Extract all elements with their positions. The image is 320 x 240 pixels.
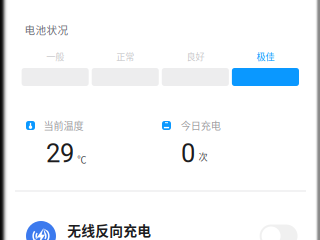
staticText: 良好 bbox=[186, 50, 204, 63]
staticText: 正常 bbox=[116, 50, 134, 63]
staticText: 次 bbox=[199, 150, 208, 163]
staticText: 当前温度 bbox=[43, 118, 83, 133]
staticText: 一般 bbox=[46, 50, 64, 63]
staticText: 极佳 bbox=[256, 50, 274, 63]
staticText: 0 bbox=[181, 138, 195, 168]
staticText: 无线反向充电 bbox=[67, 220, 151, 240]
staticText: 电池状况 bbox=[24, 22, 68, 37]
staticText: 29 bbox=[46, 138, 74, 168]
button[interactable]: 无线反向充电 bbox=[0, 212, 320, 240]
staticText: ℃ bbox=[77, 152, 86, 165]
staticText: 今日充电 bbox=[181, 118, 221, 133]
